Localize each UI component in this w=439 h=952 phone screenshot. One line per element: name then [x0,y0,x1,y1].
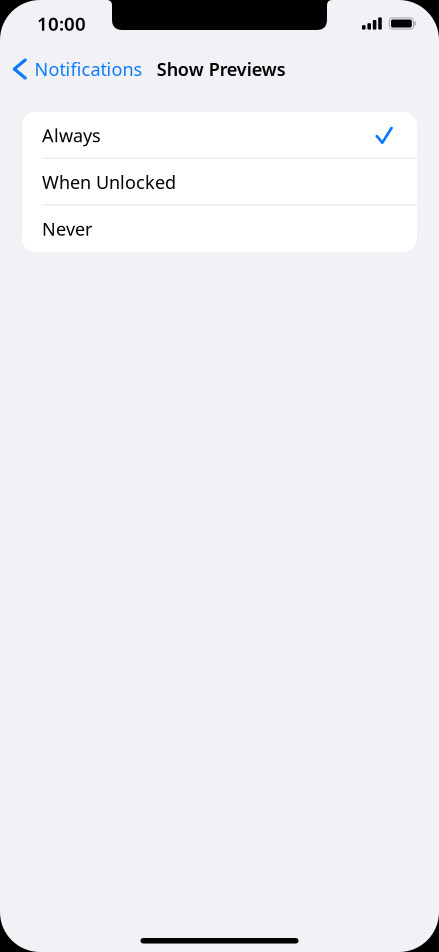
button[interactable]: Never [22,205,417,252]
button[interactable]: When Unlocked [22,159,417,205]
button[interactable]: Notifications [0,47,157,91]
staticText: 10:00 [37,11,86,36]
staticText: Notifications [34,57,142,81]
staticText: Never [42,216,92,241]
staticText: Always [42,123,101,148]
button[interactable]: Always [22,112,417,159]
staticText: When Unlocked [42,170,176,194]
staticText: Show Previews [157,57,286,81]
